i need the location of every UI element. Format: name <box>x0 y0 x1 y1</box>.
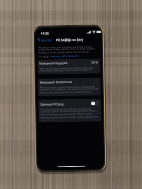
button[interactable]: Pil sağlığı <box>38 54 79 58</box>
staticText: Maksimum Performans <box>40 80 73 84</box>
staticText: Ayarlar <box>41 37 53 41</box>
staticText: hakkında daha fazla bilgi <box>50 54 79 57</box>
button[interactable]: Optimize Pil Şarjı <box>90 100 99 106</box>
staticText: Pil ömrünü uzatmak için iPhone, günlük ş… <box>40 106 99 120</box>
staticText: Pil Sağlığı ve Şarj <box>56 37 83 41</box>
staticText: Yeni iken pil kapasitesiyle kıyaslama öl… <box>39 65 98 72</box>
staticText: 14:35 <box>41 31 50 36</box>
button[interactable]: Optimize Pil Şarjı <box>38 98 101 123</box>
staticText: Pilin normal en yüksek performansı deste… <box>40 84 99 94</box>
button[interactable]: Maksimum Kapasite <box>37 58 100 75</box>
button[interactable]: Maksimum Performans <box>38 77 101 97</box>
staticText: Pil performansı, pilin kimyasal yaşından… <box>38 44 99 55</box>
button[interactable]: Ayarlar <box>35 36 54 43</box>
staticText: Optimize Pil Şarjı <box>40 102 64 107</box>
staticText: Maksimum Kapasite <box>39 61 68 66</box>
staticText: 30 % <box>91 60 98 64</box>
staticText: Pil sağlığı <box>38 54 50 58</box>
